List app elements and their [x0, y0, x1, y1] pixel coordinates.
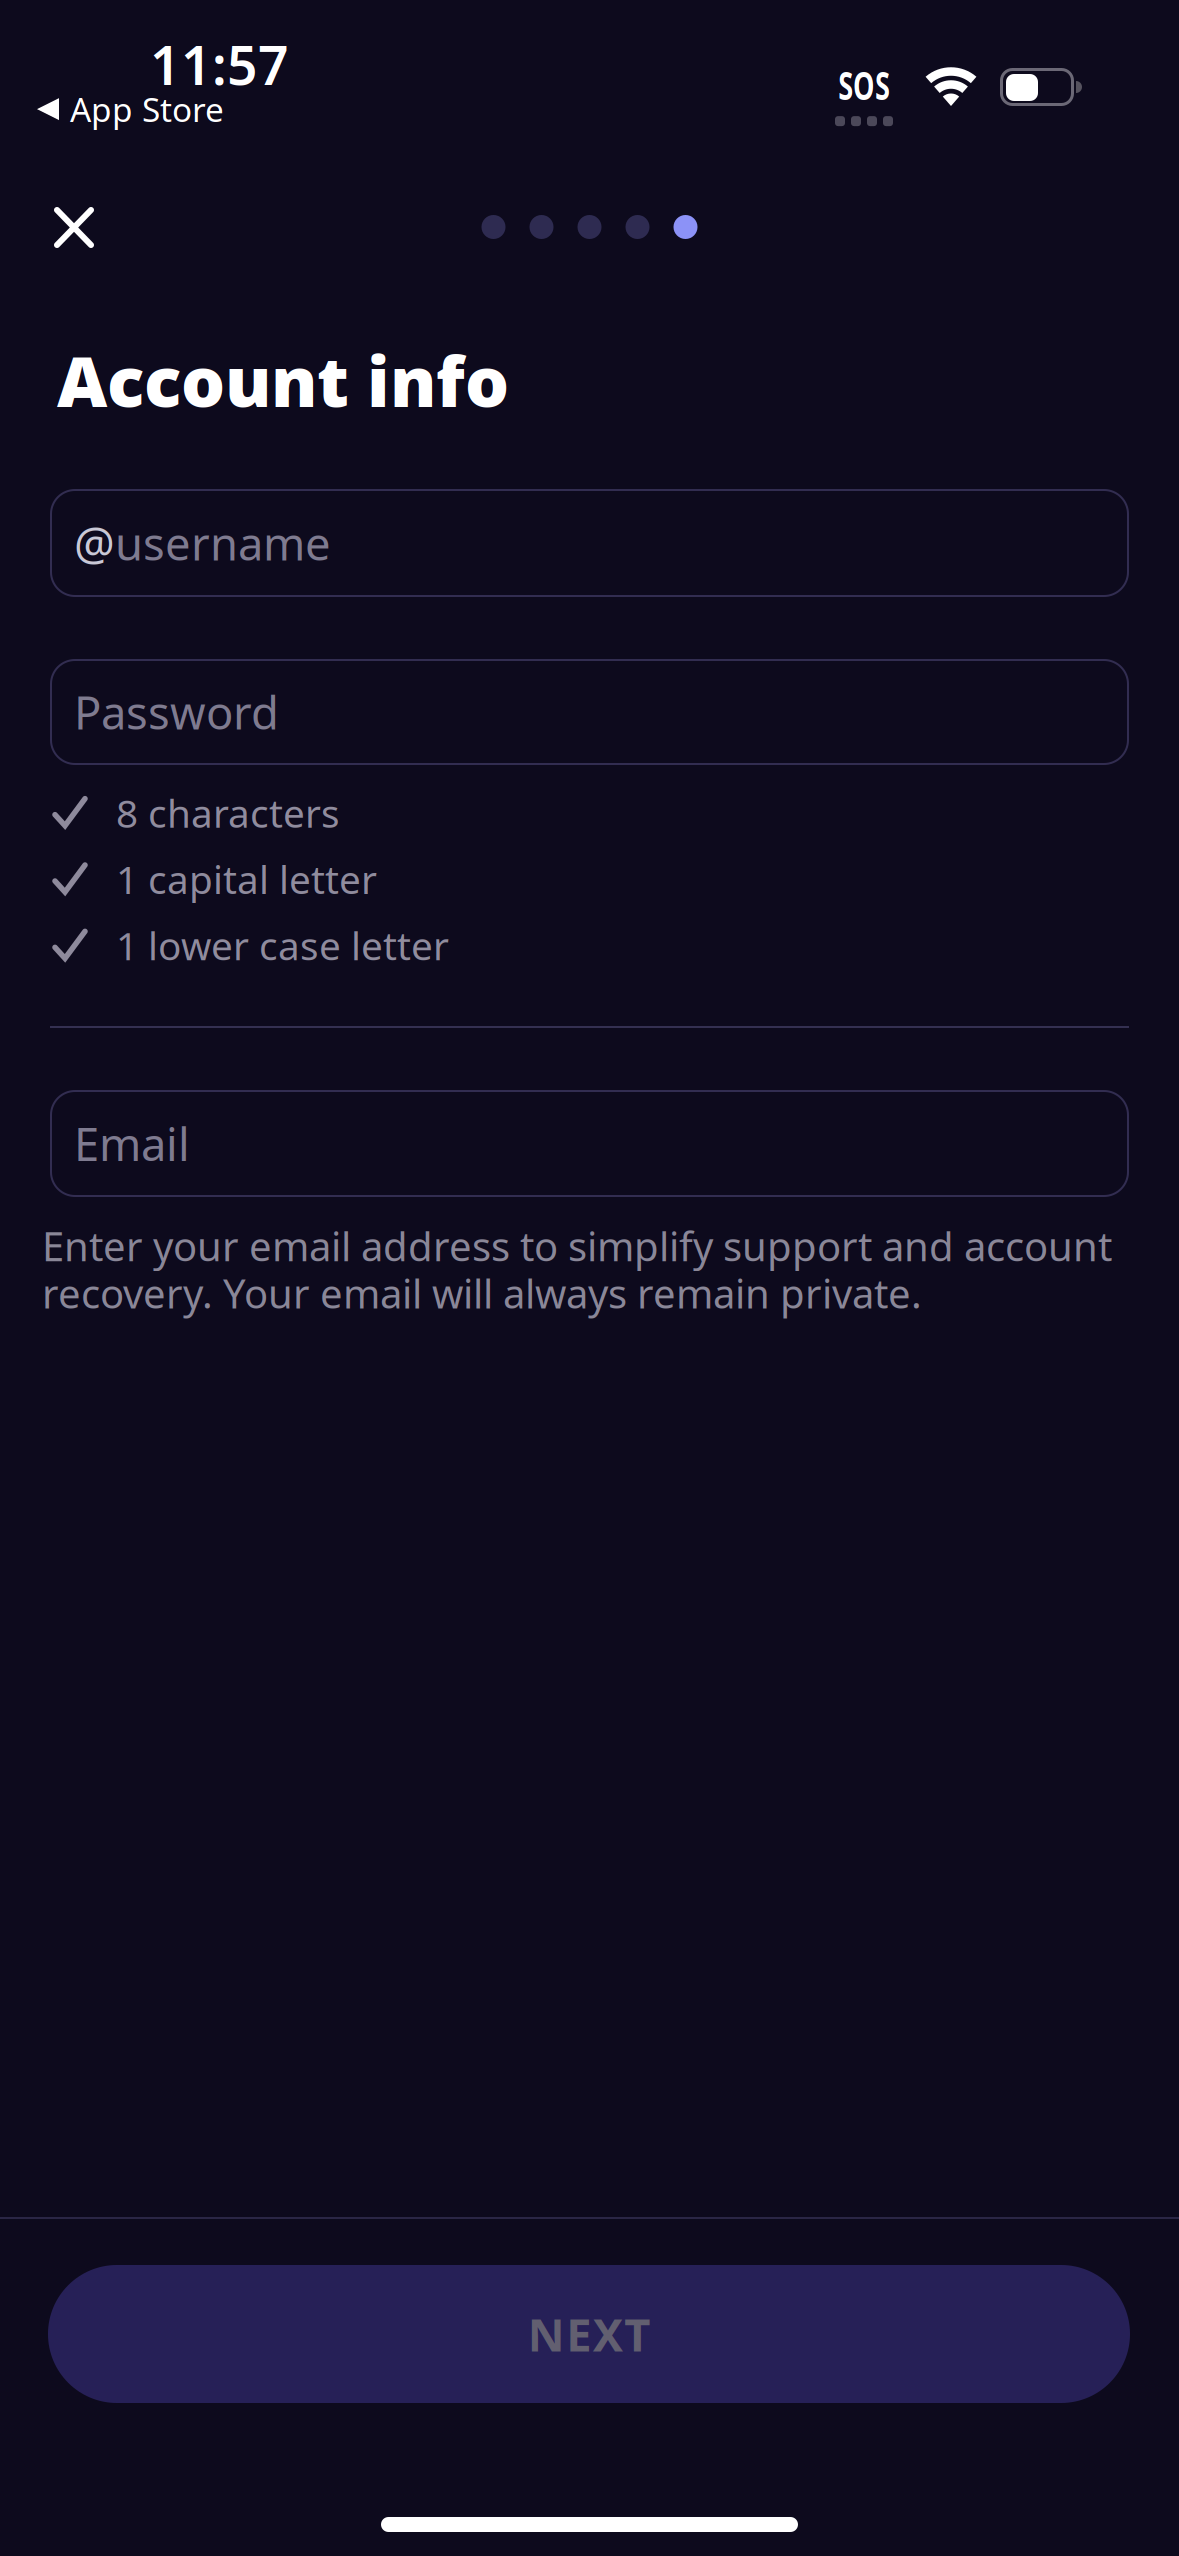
- button[interactable]: Email: [50, 1090, 1129, 1197]
- staticText: Password: [74, 682, 279, 742]
- button[interactable]: @: [50, 489, 1129, 597]
- staticText: NEXT: [528, 2304, 650, 2364]
- staticText: Email: [74, 1113, 190, 1174]
- staticText: username: [115, 513, 331, 573]
- staticText: SOS: [826, 58, 902, 111]
- staticText: 8 characters: [116, 787, 340, 838]
- staticText: Account info: [57, 334, 509, 426]
- button[interactable]: NEXT: [48, 2265, 1130, 2403]
- button[interactable]: Back to App Store: [37, 87, 224, 131]
- staticText: 1 capital letter: [116, 853, 377, 905]
- button[interactable]: Password: [50, 659, 1129, 765]
- staticText: App Store: [70, 87, 224, 131]
- button[interactable]: Close: [42, 195, 106, 260]
- staticText: @: [74, 513, 115, 573]
- staticText: 1 lower case letter: [116, 920, 449, 971]
- staticText: 11:57: [150, 29, 289, 100]
- staticText: Enter your email address to simplify sup…: [42, 1222, 1112, 1317]
